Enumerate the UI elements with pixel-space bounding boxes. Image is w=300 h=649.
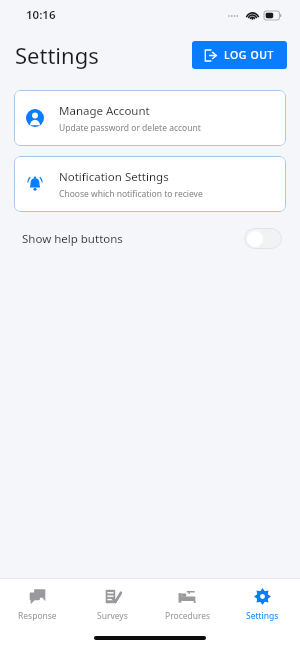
staticText: Notification Settings (59, 169, 169, 185)
staticText: Show help buttons (22, 231, 123, 247)
staticText: Procedures (165, 610, 211, 622)
button[interactable]: Manage Account (14, 90, 286, 146)
other: Show help buttons toggle (244, 228, 282, 249)
button[interactable]: Surveys (75, 579, 150, 631)
staticText: Response (18, 610, 57, 622)
staticText: Settings (15, 40, 99, 70)
staticText: 10:16 (26, 7, 56, 23)
staticText: Settings (246, 610, 279, 622)
staticText: Choose which notification to recieve (59, 188, 203, 200)
button[interactable]: Response (0, 579, 75, 631)
staticText: Surveys (97, 610, 128, 622)
button[interactable]: LOG OUT (192, 41, 287, 69)
button[interactable]: Settings (225, 579, 300, 631)
staticText: Update password or delete account (59, 122, 201, 134)
staticText: LOG OUT (224, 48, 275, 62)
button[interactable]: Show help buttons (0, 218, 300, 259)
button[interactable]: Notification Settings (14, 156, 286, 212)
button[interactable]: Procedures (150, 579, 225, 631)
staticText: Manage Account (59, 103, 150, 119)
